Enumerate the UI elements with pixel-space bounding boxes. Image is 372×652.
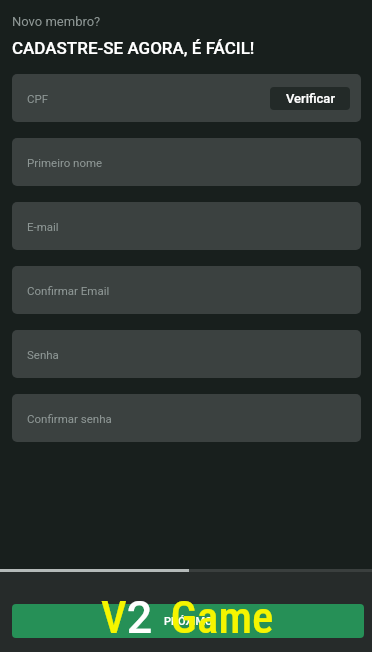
staticText: PRÓXIMO xyxy=(164,615,213,628)
other: Progresso do cadastro xyxy=(0,569,372,572)
staticText: V2 Game xyxy=(101,591,274,644)
button[interactable]: Primeiro nome xyxy=(12,138,361,186)
staticText: Confirmar Email xyxy=(27,284,110,297)
staticText: Senha xyxy=(27,348,59,361)
button[interactable]: E-mail xyxy=(12,202,361,250)
staticText: Verificar xyxy=(286,91,335,106)
staticText: Novo membro? xyxy=(12,14,101,29)
staticText: CADASTRE-SE AGORA, É FÁCIL! xyxy=(12,38,255,58)
button[interactable]: Verificar xyxy=(270,87,350,110)
button[interactable]: Confirmar Email xyxy=(12,266,361,314)
button[interactable]: CPF xyxy=(12,74,361,122)
button[interactable]: Confirmar senha xyxy=(12,394,361,442)
button[interactable]: PRÓXIMO xyxy=(12,604,364,638)
staticText: CPF xyxy=(27,92,49,105)
button[interactable]: Senha xyxy=(12,330,361,378)
staticText: E-mail xyxy=(27,220,59,233)
staticText: Confirmar senha xyxy=(27,412,112,425)
staticText: Primeiro nome xyxy=(27,156,103,169)
